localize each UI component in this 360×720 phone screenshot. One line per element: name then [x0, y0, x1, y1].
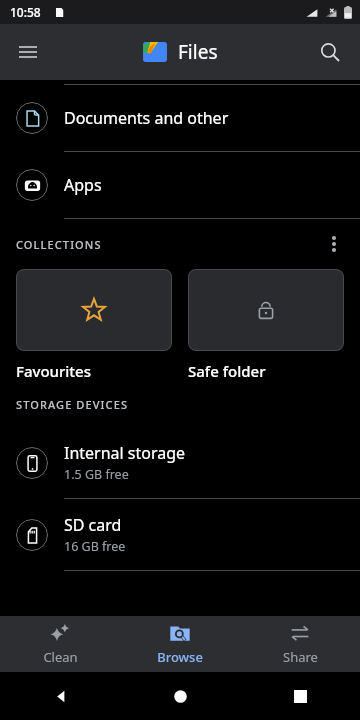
staticText: 10:58: [10, 4, 41, 20]
button[interactable]: Open navigation drawer: [4, 28, 52, 76]
button[interactable]: SD card: [0, 499, 360, 570]
button[interactable]: Share: [240, 616, 360, 672]
staticText: Documents and other: [64, 107, 229, 129]
staticText: Files: [178, 39, 218, 65]
staticText: 1.5 GB free: [64, 466, 129, 483]
button[interactable]: Internal storage: [0, 427, 360, 498]
button[interactable]: Search: [306, 28, 354, 76]
button[interactable]: Clean: [0, 616, 120, 672]
staticText: STORAGE DEVICES: [16, 397, 129, 412]
other: Home: [173, 689, 188, 704]
staticText: 16 GB free: [64, 538, 126, 555]
staticText: Browse: [157, 648, 203, 666]
staticText: COLLECTIONS: [16, 237, 102, 252]
button[interactable]: More options: [314, 224, 354, 264]
button[interactable]: Browse: [120, 616, 240, 672]
other: Back: [53, 689, 68, 704]
staticText: SD card: [64, 514, 122, 536]
staticText: Favourites: [16, 361, 92, 381]
staticText: Clean: [43, 648, 78, 666]
staticText: Internal storage: [64, 442, 186, 464]
button[interactable]: Documents and other: [0, 85, 360, 151]
button[interactable]: Favourites: [16, 269, 172, 381]
staticText: Safe folder: [188, 361, 266, 381]
button[interactable]: Apps: [0, 152, 360, 218]
button[interactable]: Safe folder: [188, 269, 344, 381]
staticText: Apps: [64, 174, 102, 196]
staticText: Share: [283, 648, 318, 666]
